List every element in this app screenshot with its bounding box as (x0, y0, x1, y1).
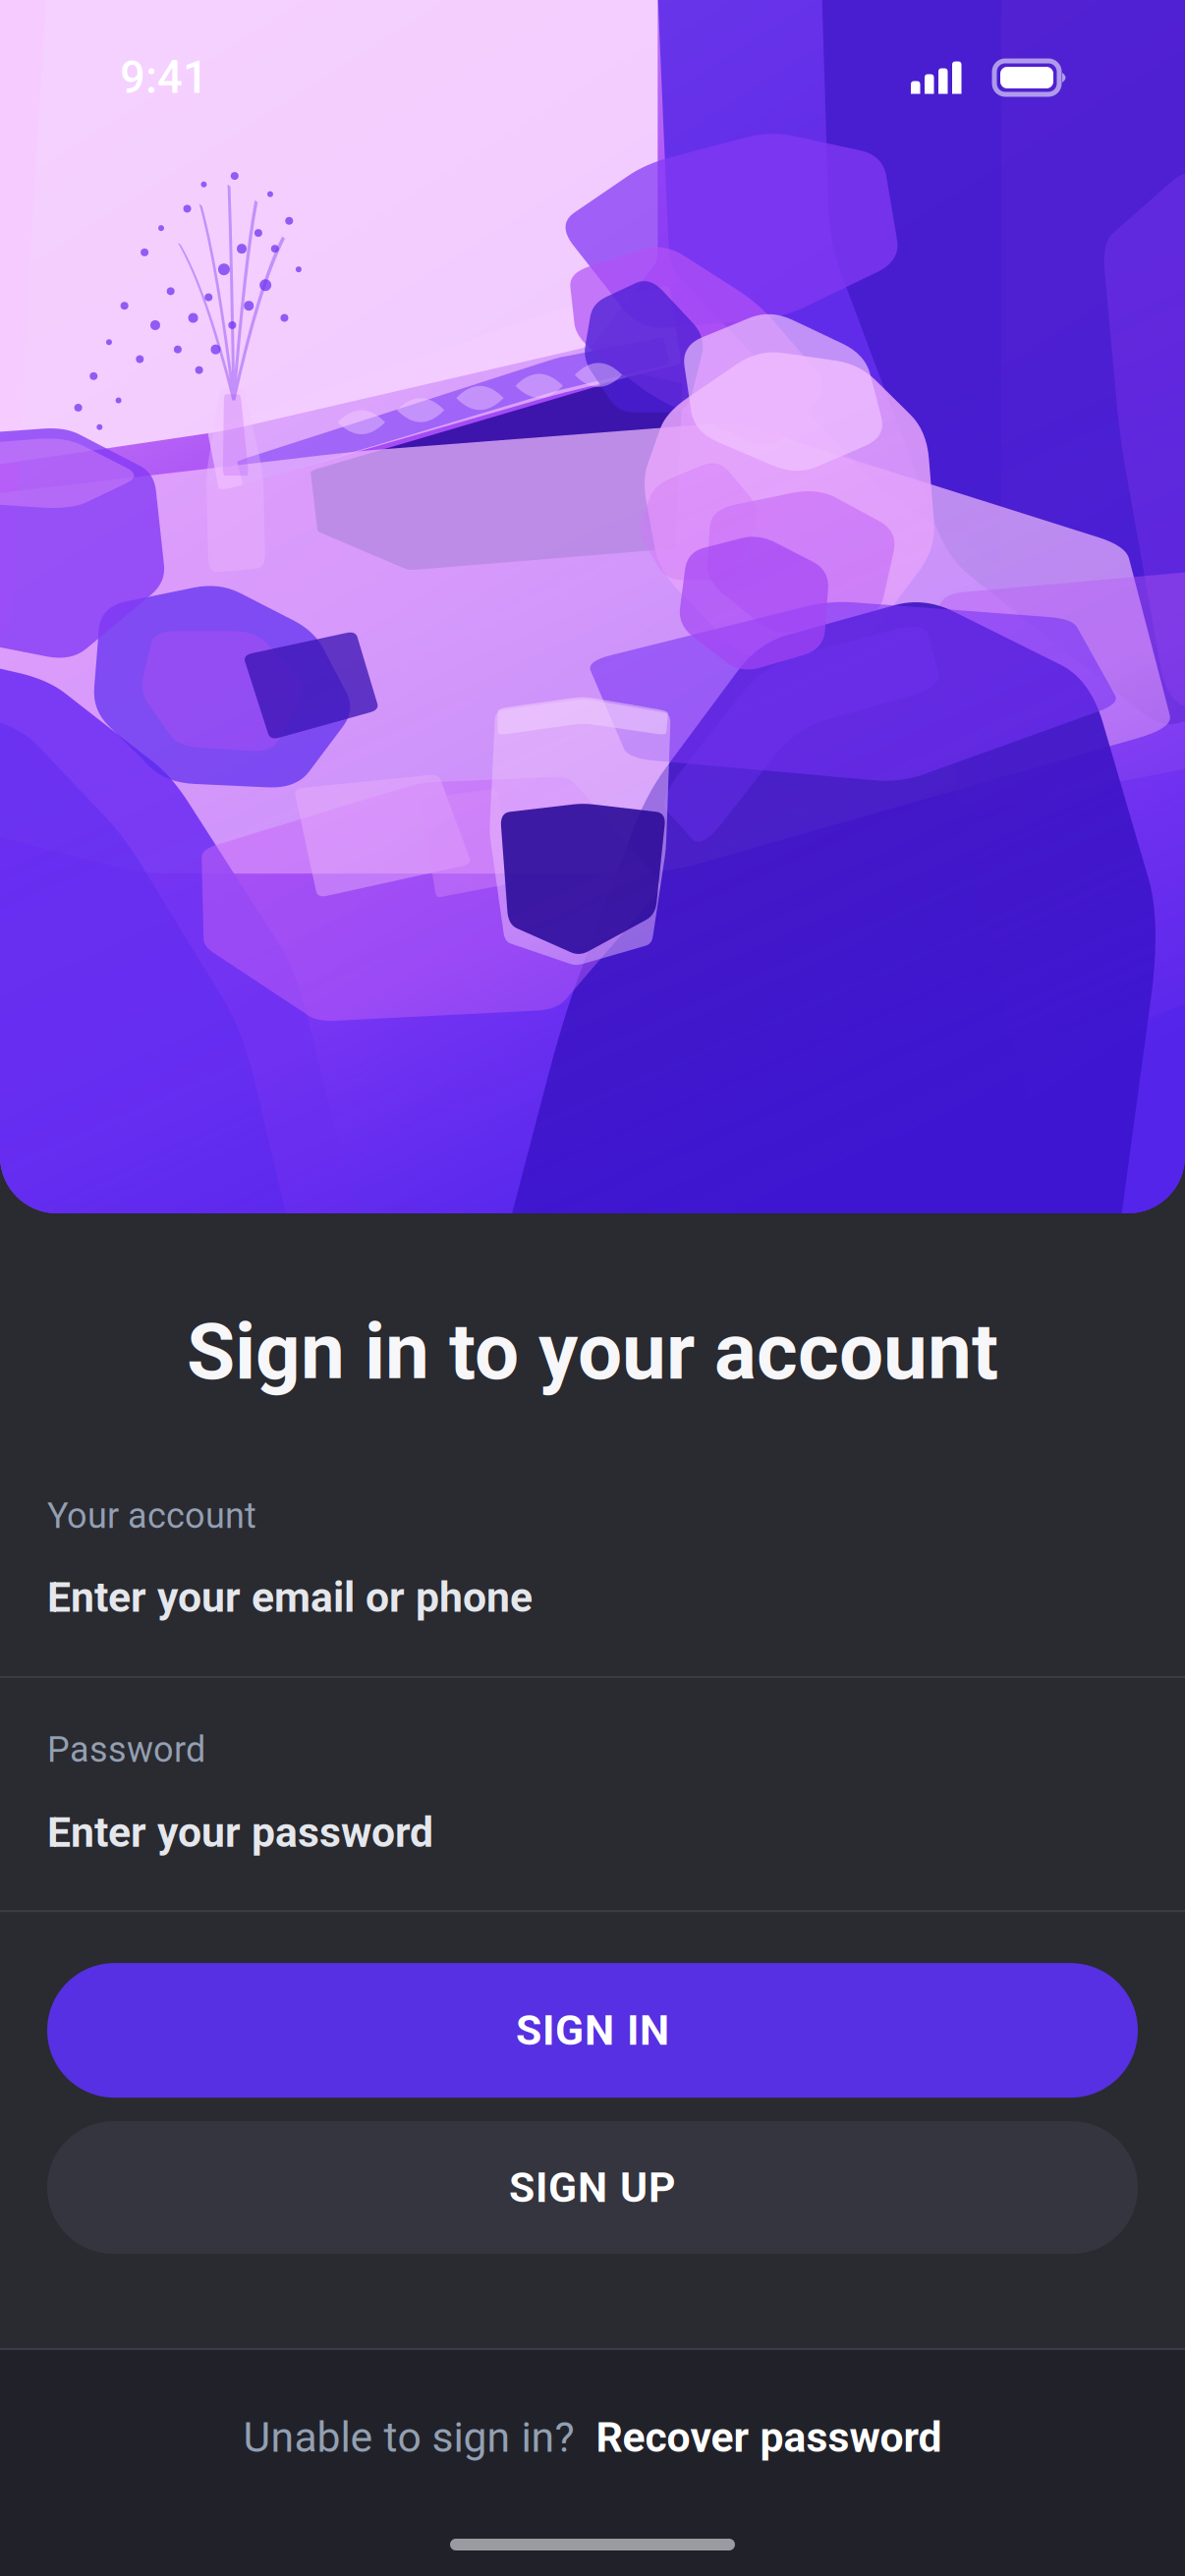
button[interactable]: Recover password (596, 2413, 942, 2462)
button[interactable]: Password (0, 1678, 1185, 1910)
button[interactable]: SIGN UP (47, 2121, 1138, 2254)
staticText: SIGN IN (516, 2006, 669, 2055)
staticText: Unable to sign in? (243, 2413, 574, 2462)
staticText: Recover password (596, 2413, 942, 2462)
staticText: Your account (47, 1495, 256, 1537)
staticText: 9:41 (120, 51, 208, 104)
staticText: Password (47, 1729, 205, 1770)
staticText: Sign in to your account (187, 1306, 998, 1398)
button[interactable]: SIGN IN (47, 1963, 1138, 2098)
staticText: SIGN UP (509, 2163, 676, 2212)
staticText: Enter your password (47, 1808, 433, 1857)
button[interactable]: Your account (0, 1495, 1185, 1676)
staticText: Enter your email or phone (47, 1573, 533, 1622)
